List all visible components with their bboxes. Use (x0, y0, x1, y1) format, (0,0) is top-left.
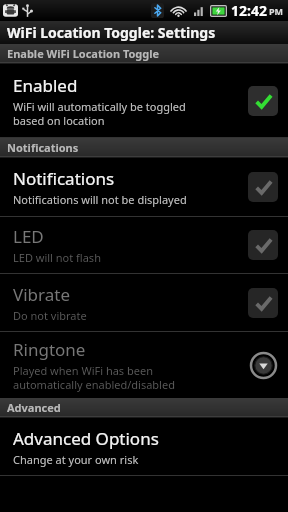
staticText: LED (13, 225, 44, 248)
staticText: LED will not flash (13, 250, 101, 265)
button[interactable]: Select ringtone (248, 350, 278, 380)
button[interactable]: Notifications (0, 158, 288, 216)
staticText: PM (269, 5, 284, 17)
staticText: Do not vibrate (13, 308, 87, 323)
button[interactable]: Advanced Options (0, 418, 288, 475)
button[interactable]: Toggle checkbox (248, 86, 278, 116)
staticText: Advanced Options (13, 427, 159, 450)
staticText: Advanced (7, 400, 61, 415)
staticText: WiFi Location Toggle: Settings (7, 23, 216, 42)
staticText: Played when WiFi has been automatically … (13, 363, 175, 392)
staticText: Change at your own risk (13, 452, 139, 467)
staticText: Notifications will not be displayed (13, 192, 187, 207)
staticText: Enable WiFi Location Toggle (7, 46, 160, 61)
button[interactable]: Enabled (0, 64, 288, 137)
staticText: Vibrate (13, 283, 70, 306)
staticText: Notifications (7, 140, 79, 155)
button[interactable]: LED (0, 217, 288, 273)
staticText: Enabled (13, 74, 78, 97)
staticText: Notifications (13, 167, 115, 190)
button[interactable]: Toggle checkbox (248, 172, 278, 202)
button[interactable]: Toggle checkbox (248, 230, 278, 260)
staticText: Ringtone (13, 338, 86, 361)
button[interactable]: Vibrate (0, 274, 288, 331)
button[interactable]: Ringtone (0, 332, 288, 398)
staticText: WiFi will automatically be toggled based… (13, 99, 186, 128)
staticText: 12:42 (231, 1, 267, 20)
button[interactable]: Toggle checkbox (248, 288, 278, 318)
